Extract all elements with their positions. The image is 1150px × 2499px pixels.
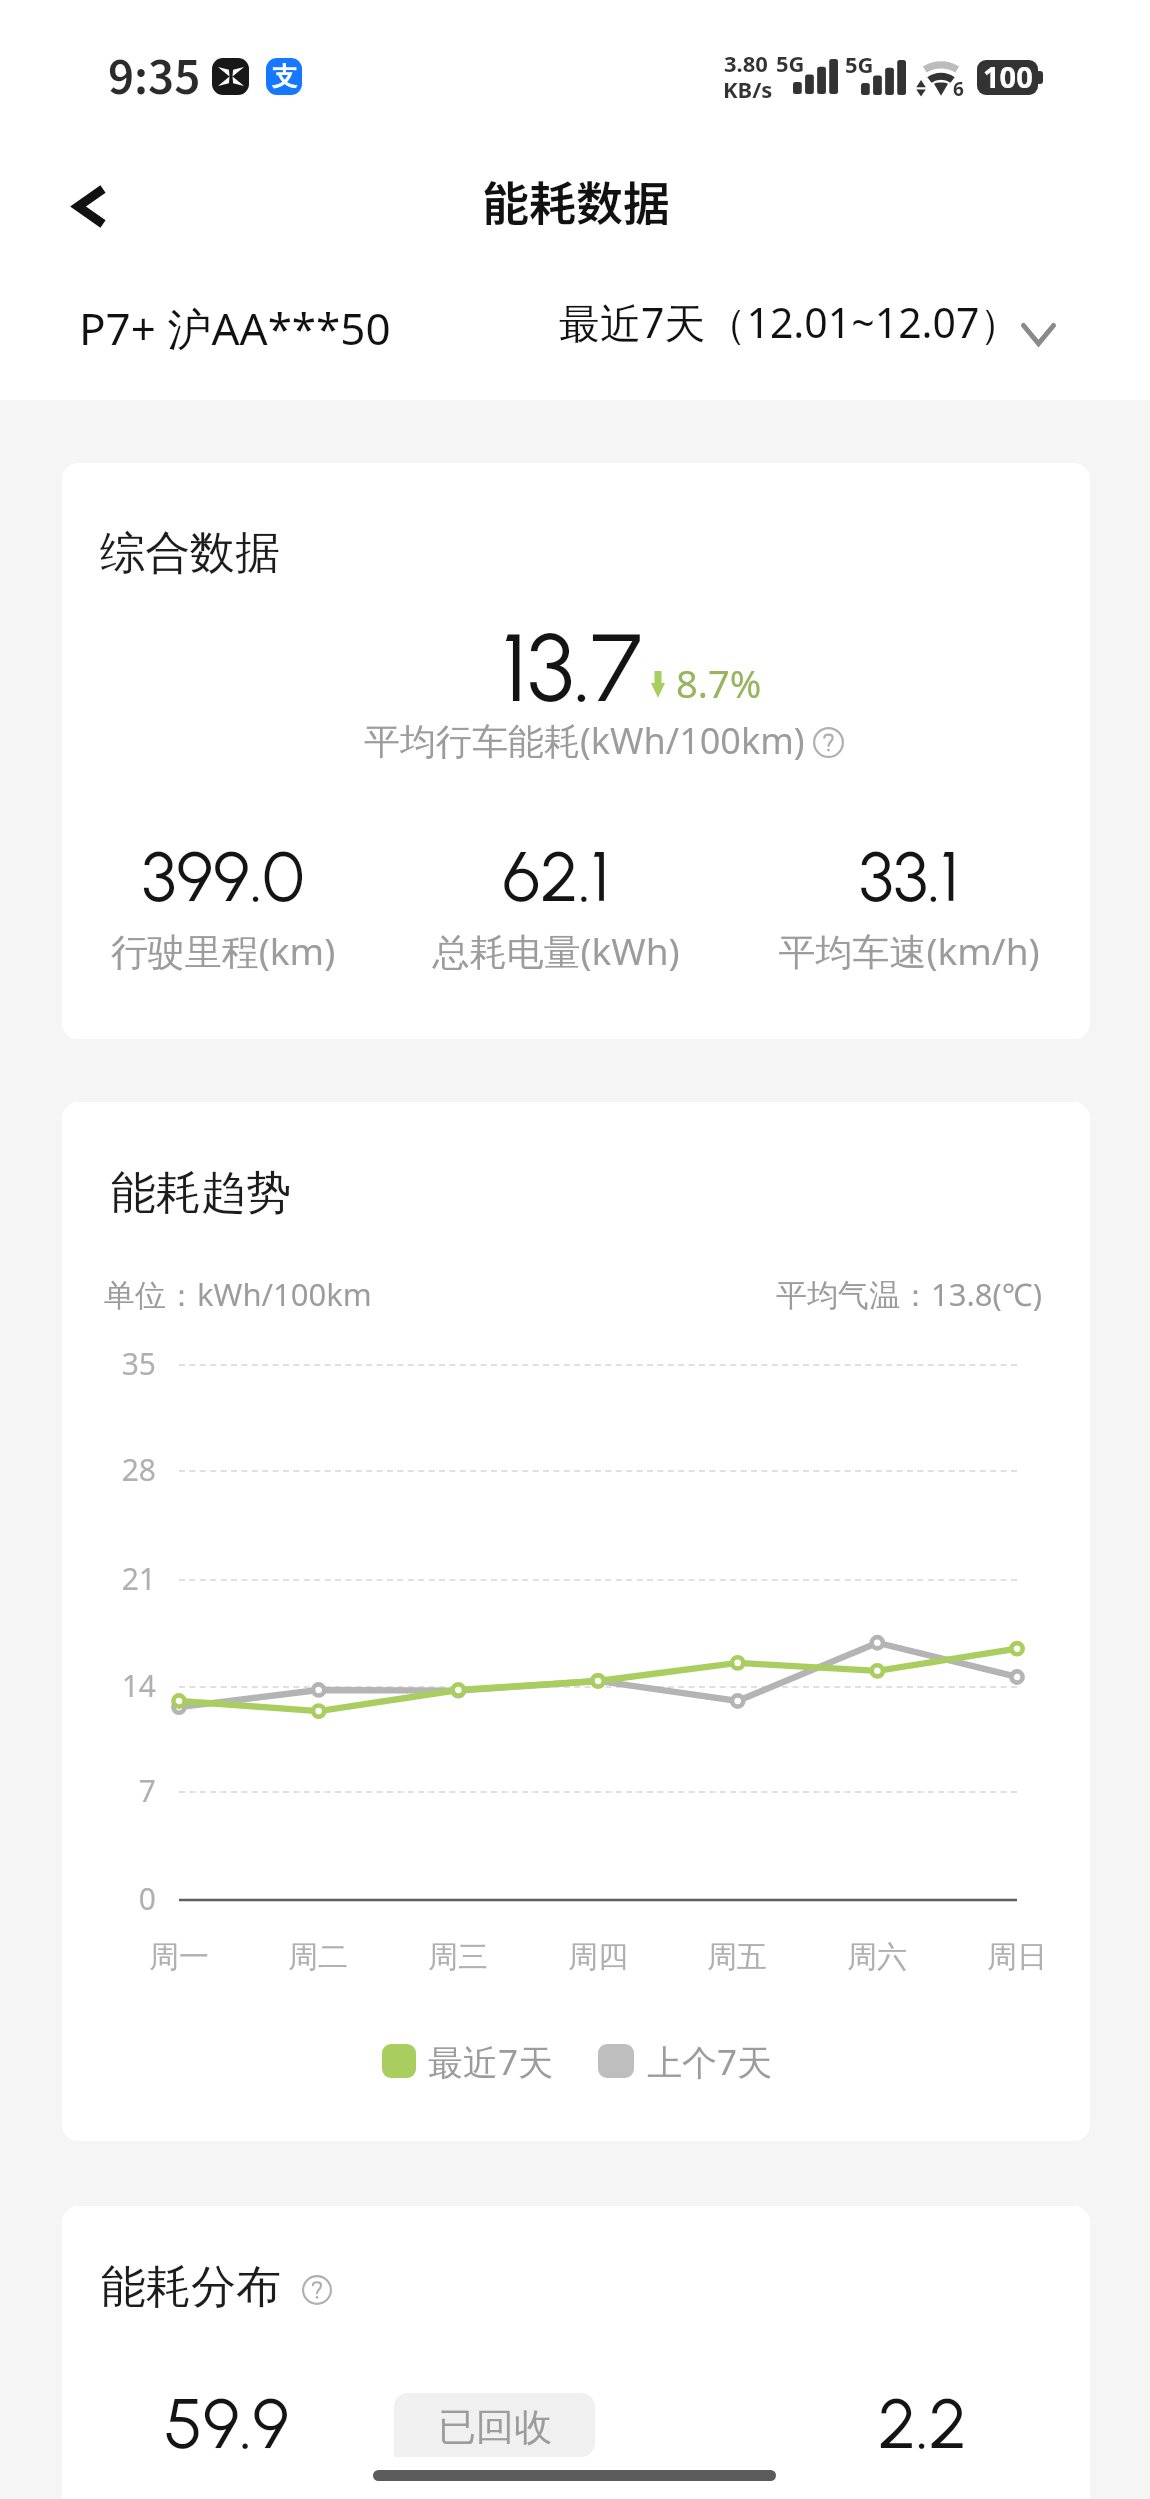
staticText: 0 xyxy=(62,1878,156,1919)
staticText: 6 xyxy=(953,76,964,102)
staticText: 能耗数据 xyxy=(482,166,670,234)
staticText: 7 xyxy=(62,1770,156,1811)
staticText: 8.7% xyxy=(676,657,762,709)
staticText: 行驶里程(km) xyxy=(62,925,423,976)
staticText: 能耗趋势 xyxy=(111,1165,291,1222)
staticText: 33.1 xyxy=(709,834,1090,918)
staticText: 已回收 xyxy=(438,2403,552,2451)
staticText: 2.2 xyxy=(878,2381,967,2465)
staticText: 399.0 xyxy=(62,834,423,918)
staticText: 周二 xyxy=(238,1938,398,1976)
staticText: 28 xyxy=(62,1449,156,1490)
staticText: 能耗分布 xyxy=(101,2259,281,2316)
staticText: P7+ 沪AA***50 xyxy=(79,298,391,358)
staticText: 5G xyxy=(776,48,805,78)
staticText: 支 xyxy=(272,61,297,92)
staticText: 平均行车能耗(kWh/100km) xyxy=(364,716,805,765)
staticText: 周日 xyxy=(937,1938,1090,1976)
staticText: 周三 xyxy=(378,1938,538,1976)
staticText: 上个7天 xyxy=(647,2038,773,2086)
staticText: 14 xyxy=(62,1665,156,1706)
staticText: 周一 xyxy=(99,1938,259,1976)
staticText: 平均气温：13.8(℃) xyxy=(776,1273,1042,1315)
staticText: 单位：kWh/100km xyxy=(104,1273,372,1315)
staticText: KB/s xyxy=(723,74,773,104)
staticText: 最近7天（12.01~12.07） xyxy=(559,294,1021,350)
staticText: 13.7 xyxy=(502,611,642,725)
staticText: 100 xyxy=(983,57,1033,92)
staticText: 平均车速(km/h) xyxy=(709,925,1090,976)
staticText: 3.80 xyxy=(724,48,768,78)
staticText: 周五 xyxy=(657,1938,817,1976)
staticText: 周四 xyxy=(518,1938,678,1976)
staticText: 5G xyxy=(845,49,874,79)
staticText: 周六 xyxy=(797,1938,957,1976)
staticText: 最近7天 xyxy=(428,2038,554,2086)
staticText: 9:35 xyxy=(108,42,201,107)
button[interactable]: Back xyxy=(44,160,136,252)
staticText: 62.1 xyxy=(356,834,756,918)
staticText: 综合数据 xyxy=(100,525,280,582)
button[interactable]: 最近7天（12.01~12.07） xyxy=(548,285,1078,363)
staticText: 35 xyxy=(62,1343,156,1384)
staticText: 59.9 xyxy=(164,2381,290,2465)
staticText: 21 xyxy=(62,1558,156,1599)
staticText: 总耗电量(kWh) xyxy=(356,925,756,976)
